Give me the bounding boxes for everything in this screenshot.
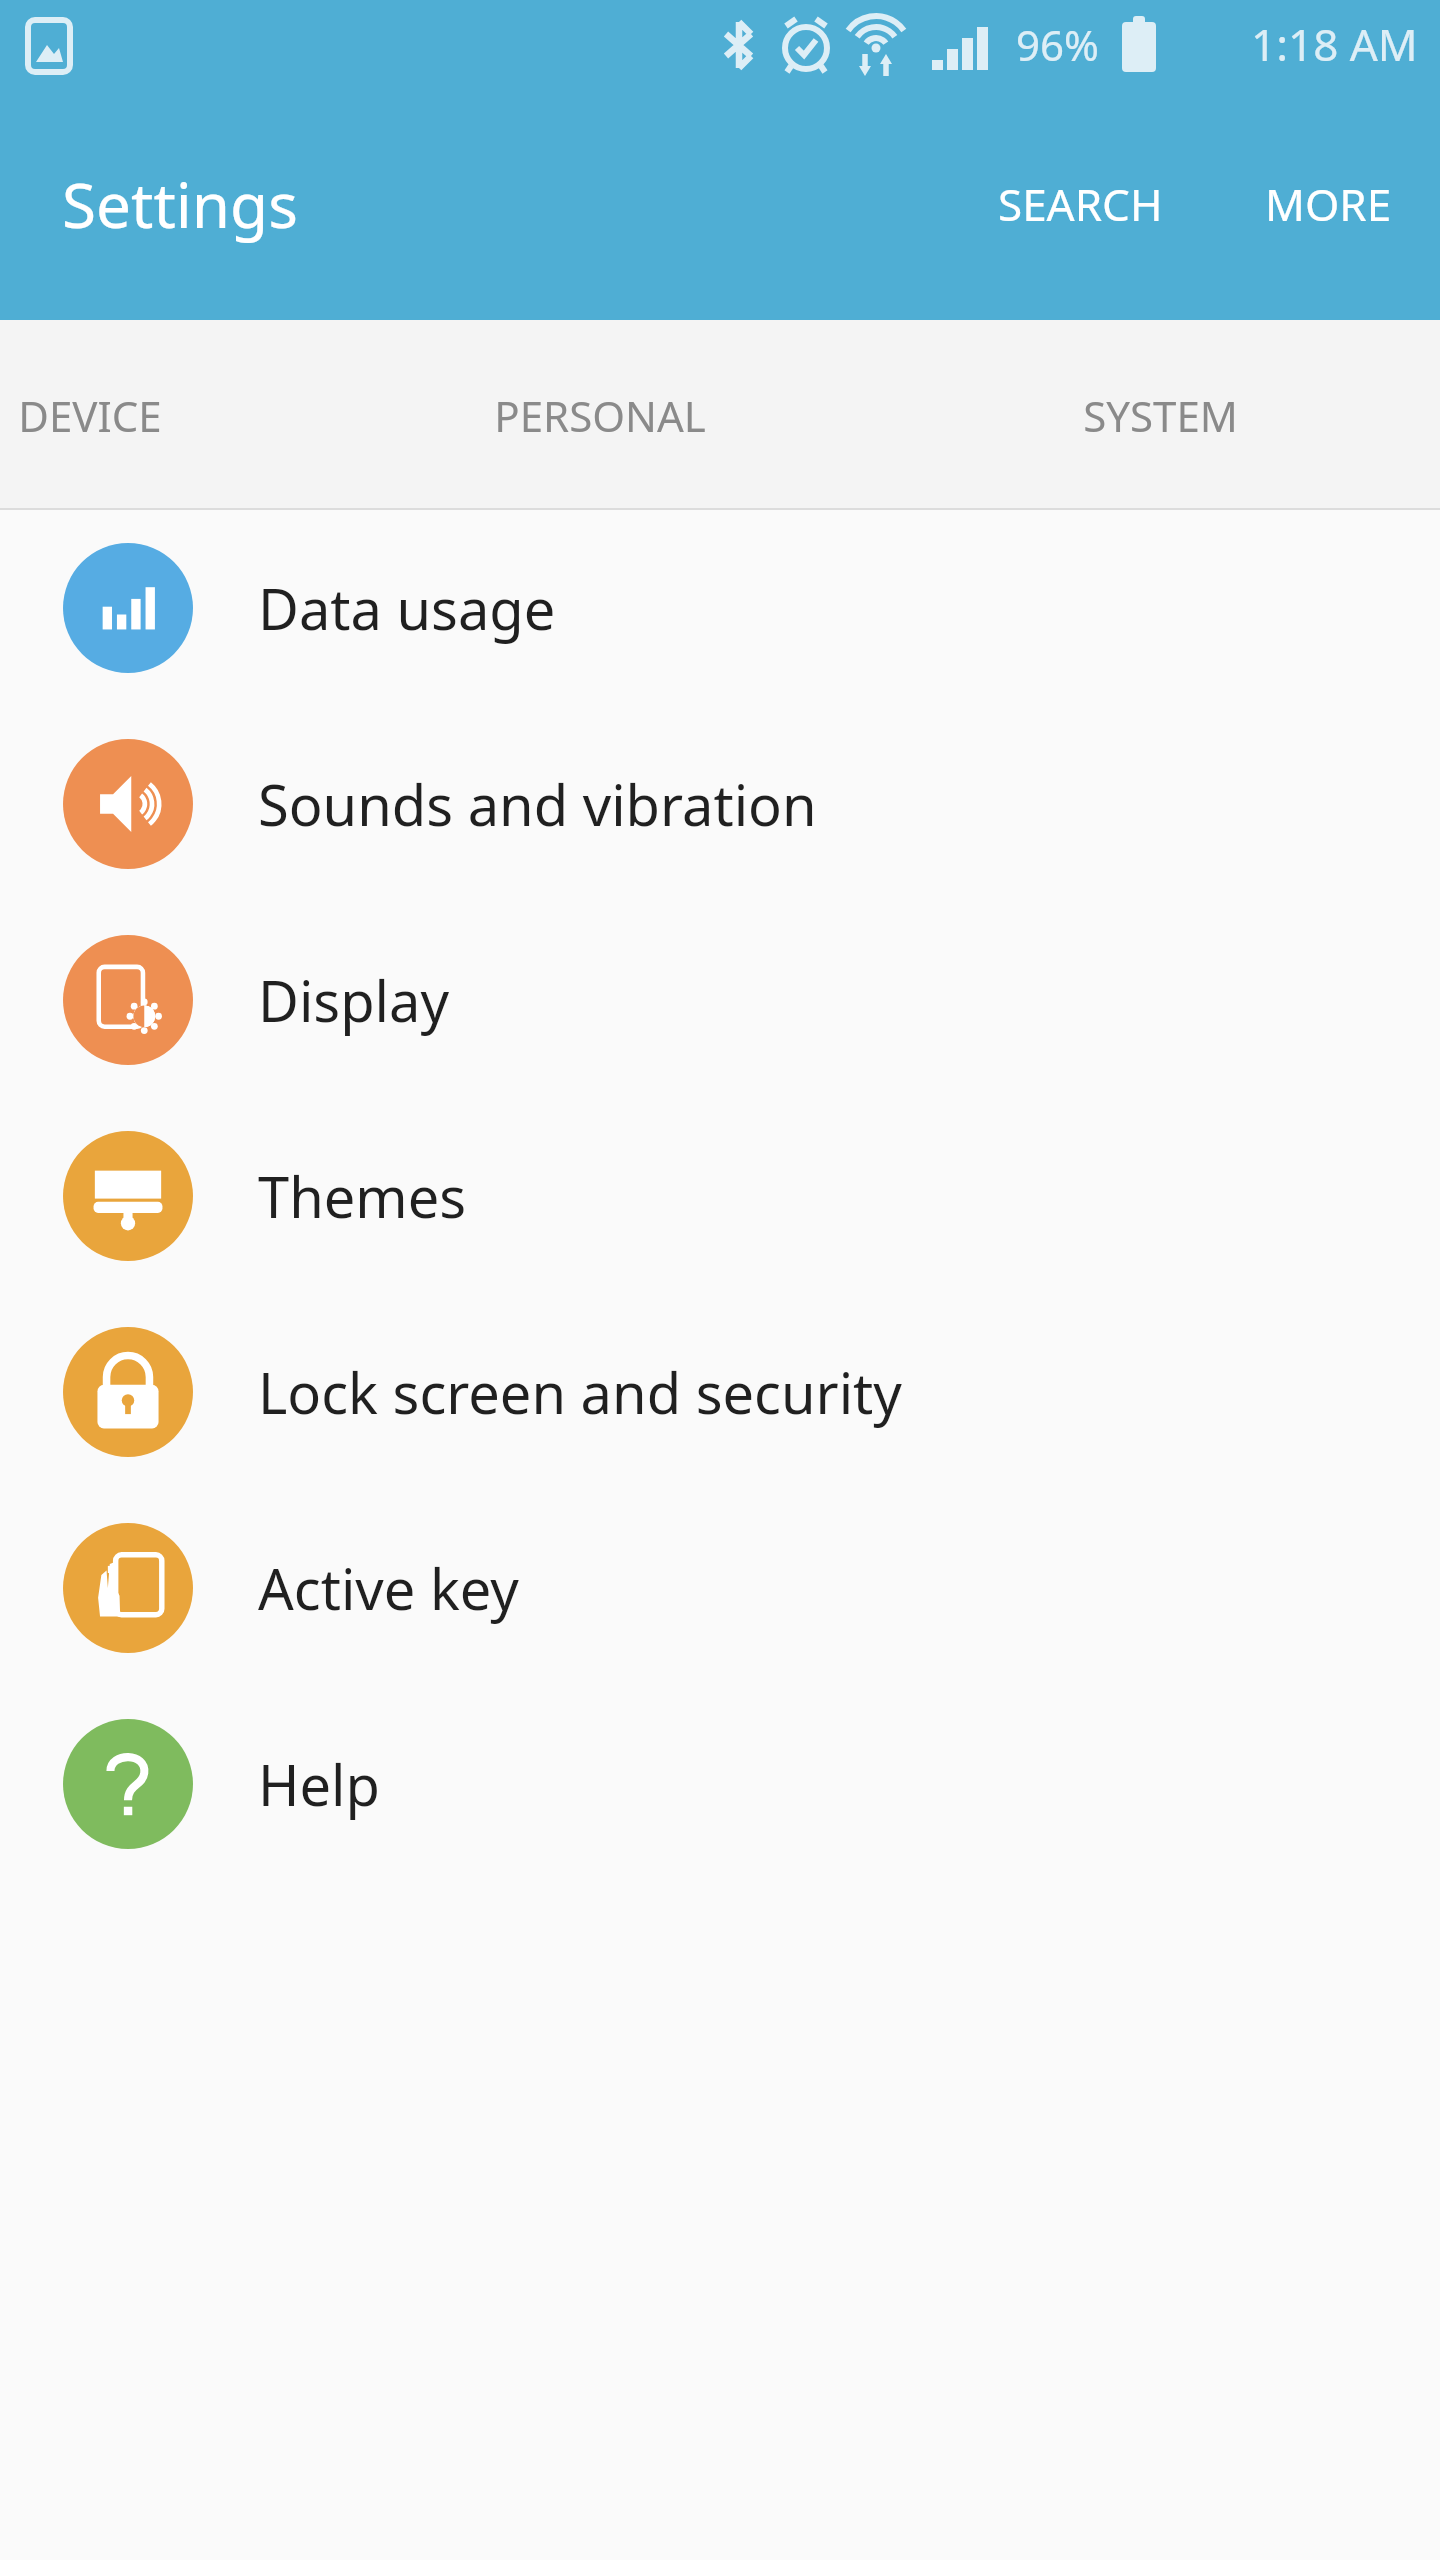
staticText: 1:18 AM xyxy=(1251,14,1418,74)
button[interactable]: Themes xyxy=(0,1098,1440,1294)
button[interactable]: Lock screen and security xyxy=(0,1294,1440,1490)
button[interactable]: Help xyxy=(0,1686,1440,1882)
staticText: 96% xyxy=(1016,16,1099,73)
button[interactable]: SYSTEM xyxy=(1000,320,1320,510)
staticText: Themes xyxy=(258,1158,467,1234)
staticText: Settings xyxy=(62,162,298,246)
button[interactable]: SEARCH xyxy=(982,156,1179,252)
staticText: PERSONAL xyxy=(494,387,706,444)
staticText: Sounds and vibration xyxy=(258,766,817,842)
staticText: Active key xyxy=(258,1550,519,1626)
button[interactable]: Sounds and vibration xyxy=(0,706,1440,902)
button[interactable]: Display xyxy=(0,902,1440,1098)
button[interactable]: PERSONAL xyxy=(440,320,760,510)
button[interactable]: Data usage xyxy=(0,510,1440,706)
staticText: Help xyxy=(258,1746,380,1822)
staticText: Lock screen and security xyxy=(258,1354,902,1430)
button[interactable]: MORE xyxy=(1249,156,1408,252)
button[interactable]: Active key xyxy=(0,1490,1440,1686)
staticText: Display xyxy=(258,962,450,1038)
staticText: Data usage xyxy=(258,570,556,646)
staticText: SEARCH xyxy=(998,174,1163,234)
staticText: DEVICE xyxy=(18,387,162,444)
staticText: SYSTEM xyxy=(1083,387,1238,444)
staticText: MORE xyxy=(1265,174,1392,234)
button[interactable]: DEVICE xyxy=(0,320,240,510)
